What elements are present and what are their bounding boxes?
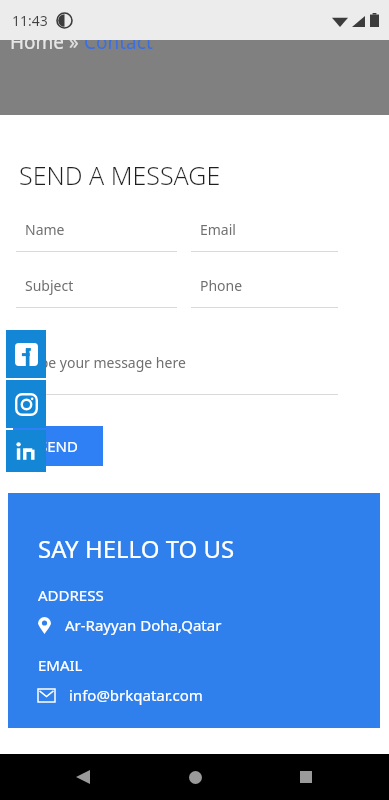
button[interactable]: SEND	[13, 426, 103, 466]
button[interactable]: Recent apps	[289, 760, 323, 794]
staticText: ADDRESS	[38, 585, 104, 605]
button[interactable]: SAY HELLO TO US	[8, 493, 380, 728]
staticText: Home	[10, 40, 69, 55]
staticText: Email	[200, 220, 236, 239]
staticText: Name	[25, 220, 65, 239]
staticText: EMAIL	[38, 655, 83, 675]
staticText: info@brkqatar.com	[69, 685, 203, 705]
button[interactable]: Phone	[191, 276, 338, 308]
button[interactable]: Name	[16, 220, 177, 252]
staticText: SAY HELLO TO US	[38, 532, 235, 565]
staticText: SEND	[39, 436, 78, 456]
staticText: Phone	[200, 276, 243, 295]
staticText: Contact	[84, 40, 153, 55]
button[interactable]: Instagram	[6, 380, 46, 428]
button[interactable]: Type your message here	[16, 329, 338, 395]
staticText: Subject	[25, 276, 74, 295]
button[interactable]: Subject	[16, 276, 177, 308]
button[interactable]: Back	[66, 760, 100, 794]
staticText: »	[69, 40, 84, 55]
button[interactable]: LinkedIn	[6, 430, 46, 472]
staticText: 11:43	[12, 11, 48, 30]
staticText: SEND A MESSAGE	[19, 158, 221, 192]
button[interactable]: Email	[191, 220, 338, 252]
staticText: Ar-Rayyan Doha,Qatar	[65, 615, 222, 635]
button[interactable]: Facebook	[6, 330, 46, 378]
staticText: Type your message here	[25, 353, 186, 372]
button[interactable]: Home	[178, 760, 212, 794]
